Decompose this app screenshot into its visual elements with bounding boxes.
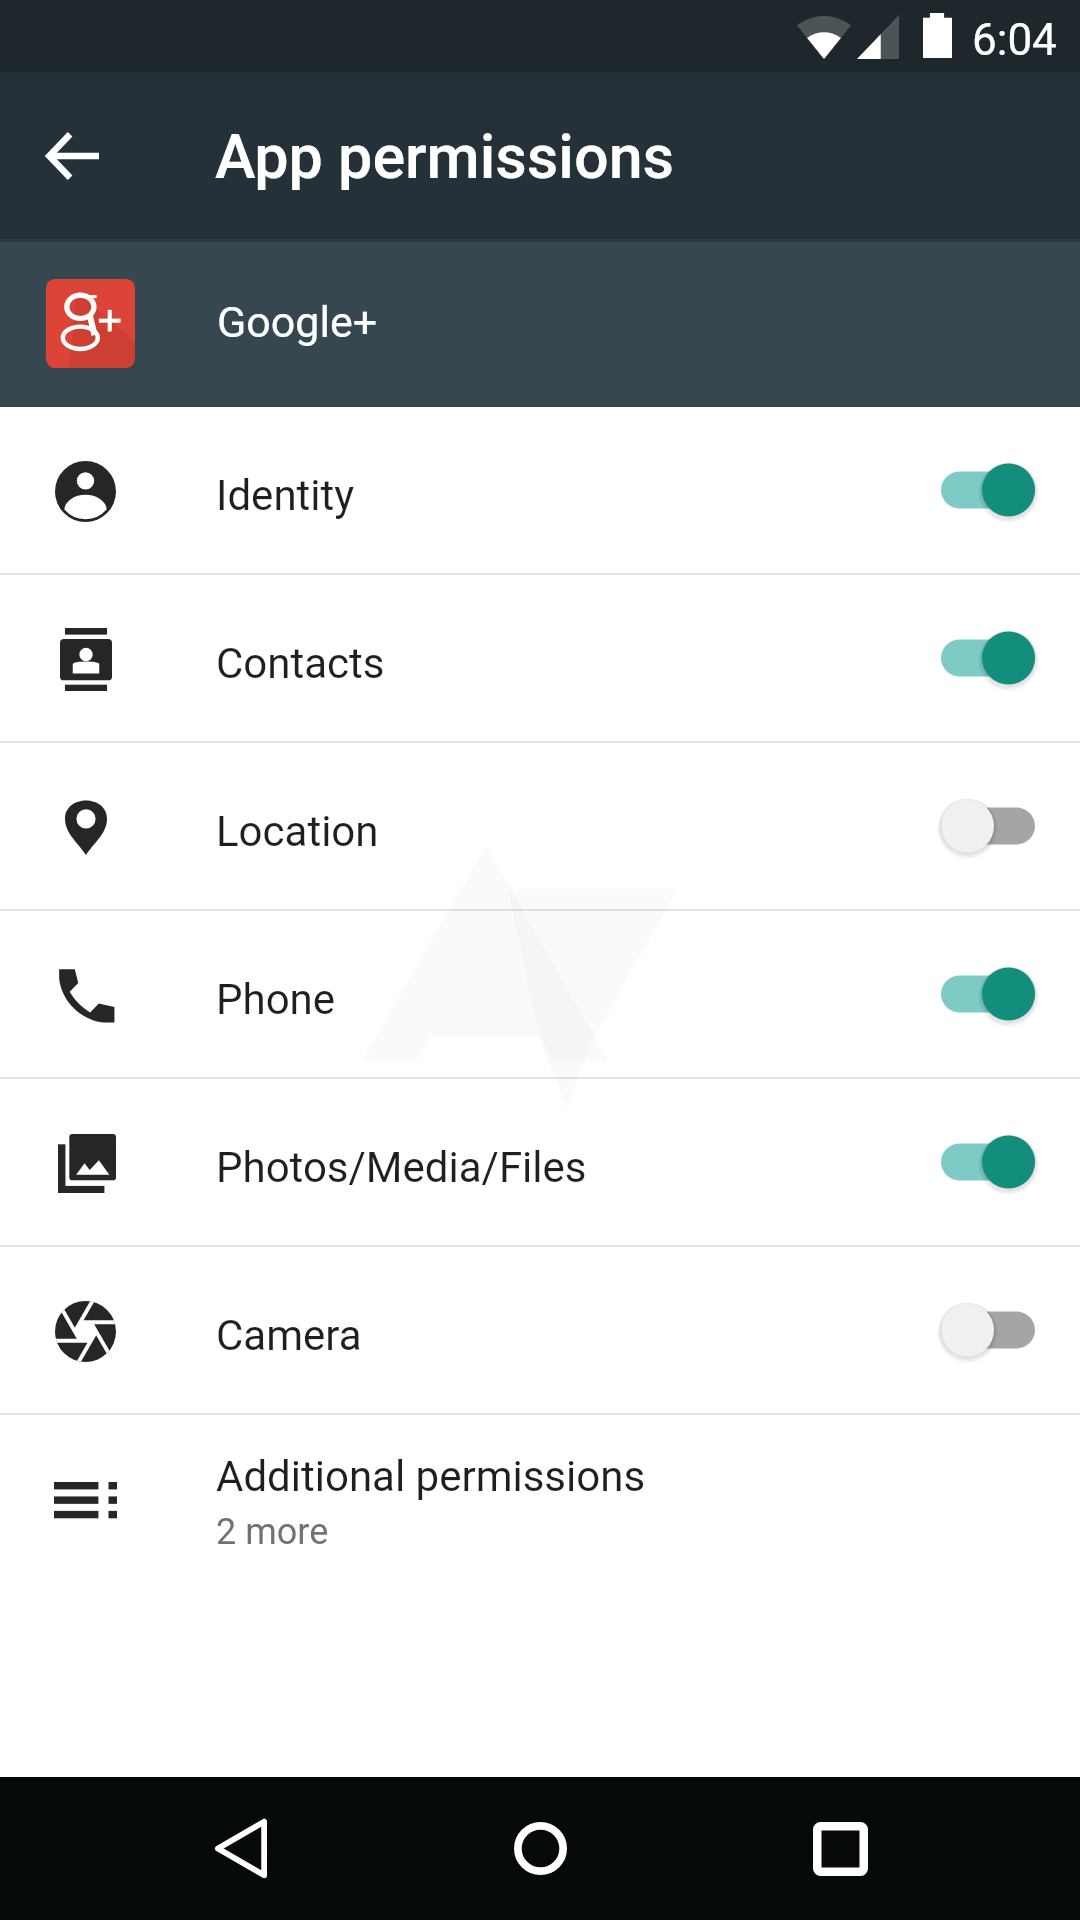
button[interactable]: Back bbox=[151, 1777, 331, 1920]
staticText: Additional permissions bbox=[216, 1452, 646, 1501]
button[interactable]: Home bbox=[450, 1777, 630, 1920]
button[interactable]: Camera bbox=[0, 1247, 1080, 1413]
button[interactable]: Phone permission bbox=[918, 934, 1058, 1054]
staticText: Google+ bbox=[217, 297, 378, 347]
button[interactable]: Identity bbox=[0, 407, 1080, 573]
button[interactable]: Contacts bbox=[0, 575, 1080, 741]
staticText: Identity bbox=[216, 471, 355, 520]
button[interactable]: Identity permission bbox=[918, 430, 1058, 550]
button[interactable]: Location permission bbox=[918, 766, 1058, 886]
button[interactable]: Phone bbox=[0, 911, 1080, 1077]
staticText: 2 more bbox=[216, 1511, 329, 1553]
button[interactable]: Contacts permission bbox=[918, 598, 1058, 718]
button[interactable]: Additional permissions bbox=[0, 1415, 1080, 1581]
button[interactable]: Photos/Media/Files permission bbox=[918, 1102, 1058, 1222]
staticText: Phone bbox=[216, 975, 336, 1024]
button[interactable]: Navigate up bbox=[22, 106, 122, 206]
staticText: 6:04 bbox=[972, 14, 1057, 66]
button[interactable]: Camera permission bbox=[918, 1270, 1058, 1390]
staticText: Photos/Media/Files bbox=[216, 1143, 587, 1192]
button[interactable]: Photos/Media/Files bbox=[0, 1079, 1080, 1245]
staticText: Contacts bbox=[216, 639, 385, 688]
staticText: Location bbox=[216, 807, 379, 856]
button[interactable]: Recent apps bbox=[750, 1777, 930, 1920]
staticText: App permissions bbox=[215, 121, 675, 192]
staticText: Camera bbox=[216, 1311, 362, 1360]
button[interactable]: Location bbox=[0, 743, 1080, 909]
button[interactable]: Google+ bbox=[0, 239, 1080, 407]
